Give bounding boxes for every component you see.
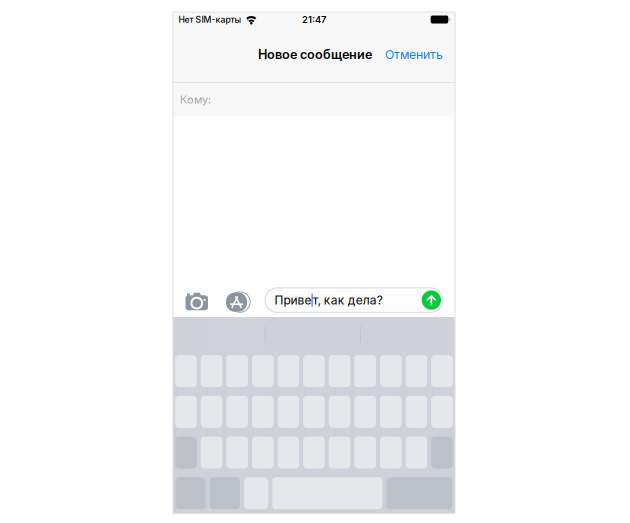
staticText: Кому:: [180, 93, 211, 106]
button[interactable]: Отменить: [384, 40, 444, 69]
staticText: Нет SIM-карты: [178, 14, 241, 25]
staticText: 21:47: [302, 14, 326, 25]
staticText: Отменить: [385, 47, 443, 62]
button[interactable]: Apps: [224, 285, 252, 316]
staticText: Новое сообщение: [258, 47, 372, 62]
staticText: т, как дела?: [313, 293, 383, 307]
staticText: Приве: [274, 293, 311, 307]
button[interactable]: Camera: [181, 285, 212, 315]
button[interactable]: Send: [422, 290, 441, 310]
button[interactable]: Кому:: [173, 83, 455, 116]
